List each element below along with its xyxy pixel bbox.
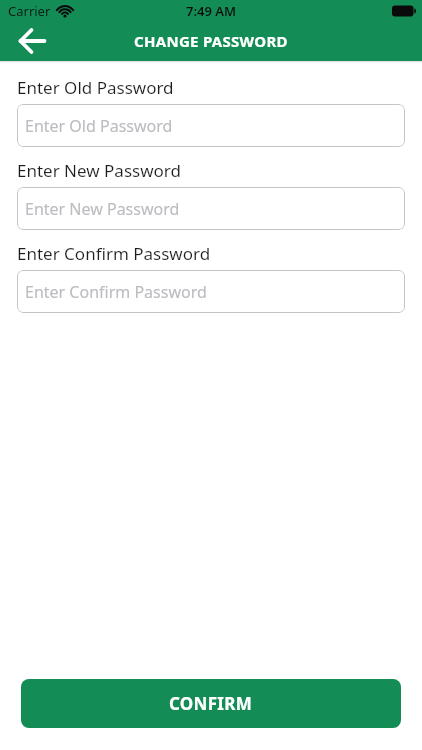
staticText: Carrier — [8, 2, 51, 20]
button[interactable]: CONFIRM — [21, 679, 401, 728]
button[interactable]: Enter Old Password — [17, 104, 405, 147]
staticText: 7:49 AM — [186, 2, 237, 20]
staticText: CONFIRM — [169, 692, 253, 715]
staticText: Enter New Password — [25, 198, 180, 220]
button[interactable]: Enter Confirm Password — [17, 270, 405, 313]
button[interactable] — [10, 21, 54, 61]
button[interactable]: Enter New Password — [17, 187, 405, 230]
staticText: Enter Old Password — [25, 115, 173, 137]
staticText: Enter Confirm Password — [17, 242, 211, 265]
staticText: Enter Confirm Password — [25, 281, 207, 303]
staticText: CHANGE PASSWORD — [134, 31, 288, 51]
staticText: Enter Old Password — [17, 76, 174, 99]
staticText: Enter New Password — [17, 159, 181, 182]
